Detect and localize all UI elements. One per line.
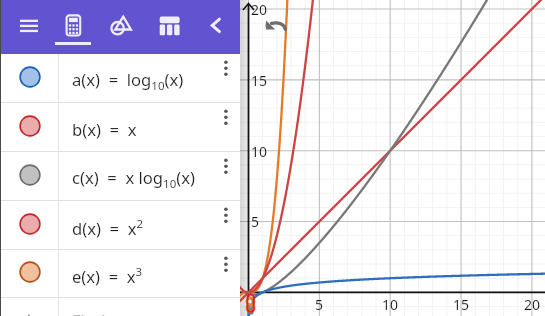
button[interactable]: More options xyxy=(218,158,234,174)
staticText: 15 xyxy=(251,71,268,90)
button[interactable]: Open menu xyxy=(11,10,47,46)
staticText: 10 xyxy=(251,142,268,161)
button[interactable]: Geometry view xyxy=(99,6,137,44)
button[interactable]: Table view xyxy=(149,6,187,44)
staticText: c(x) = x log10(x) xyxy=(72,166,195,191)
button[interactable]: More options xyxy=(218,60,234,76)
button[interactable]: More options xyxy=(218,256,234,272)
staticText: 5 xyxy=(251,212,260,231)
button[interactable]: Algebra view xyxy=(56,6,94,44)
staticText: 20 xyxy=(524,295,541,314)
staticText: 5 xyxy=(315,295,324,314)
button[interactable]: c(x) = x log10(x) xyxy=(0,152,240,201)
button[interactable]: Undo xyxy=(263,18,288,43)
button[interactable]: Find... xyxy=(0,297,240,316)
button[interactable]: Collapse panel xyxy=(199,7,233,41)
staticText: d(x) = x2 xyxy=(72,216,144,240)
staticText: 20 xyxy=(251,0,268,19)
button[interactable]: b(x) = x xyxy=(0,103,240,152)
staticText: a(x) = log10(x) xyxy=(72,68,184,93)
staticText: 15 xyxy=(453,295,470,314)
button[interactable]: a(x) = log10(x) xyxy=(0,54,240,103)
button[interactable]: e(x) = x3 xyxy=(0,250,240,298)
staticText: 10 xyxy=(382,295,399,314)
staticText: e(x) = x3 xyxy=(72,264,143,288)
button[interactable]: d(x) = x2 xyxy=(0,201,240,250)
button[interactable]: More options xyxy=(218,109,234,125)
staticText: b(x) = x xyxy=(72,118,137,141)
staticText: Find... xyxy=(72,309,119,316)
button[interactable]: More options xyxy=(218,207,234,223)
